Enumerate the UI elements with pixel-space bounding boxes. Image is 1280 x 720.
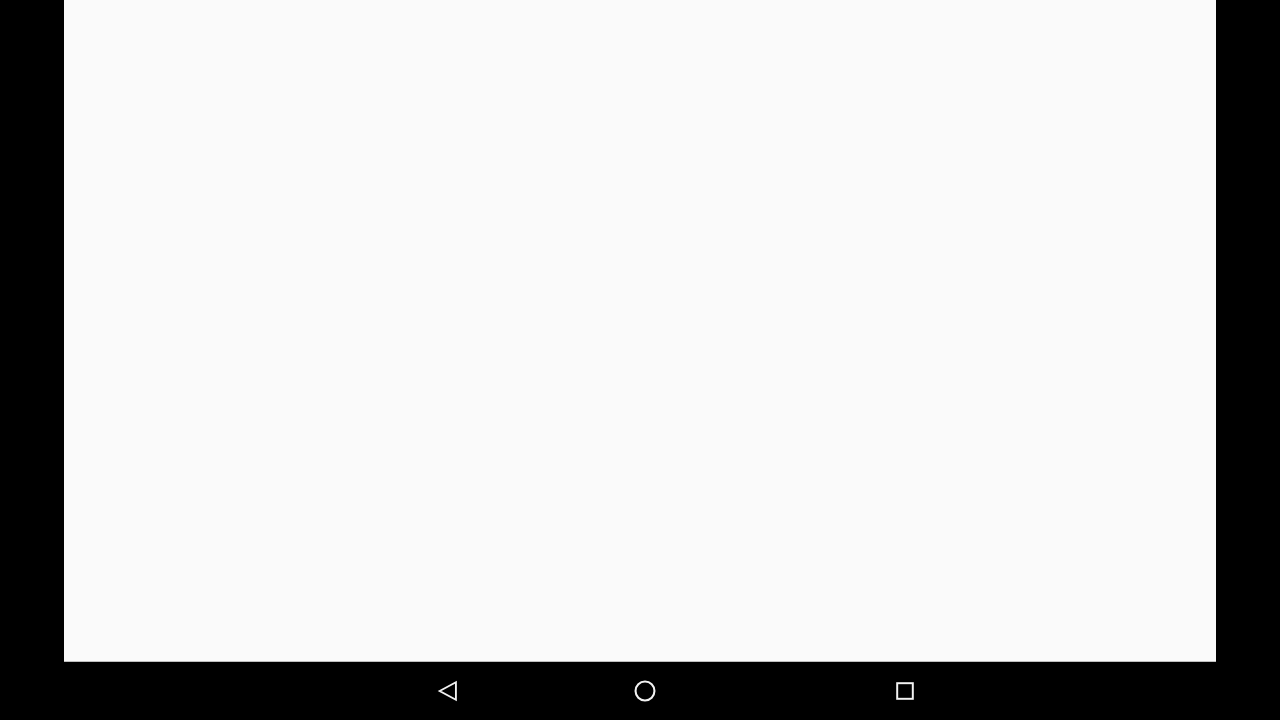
button[interactable]: Recent apps (776, 662, 1034, 720)
button[interactable]: Home (514, 662, 776, 720)
button[interactable]: Back (382, 662, 514, 720)
